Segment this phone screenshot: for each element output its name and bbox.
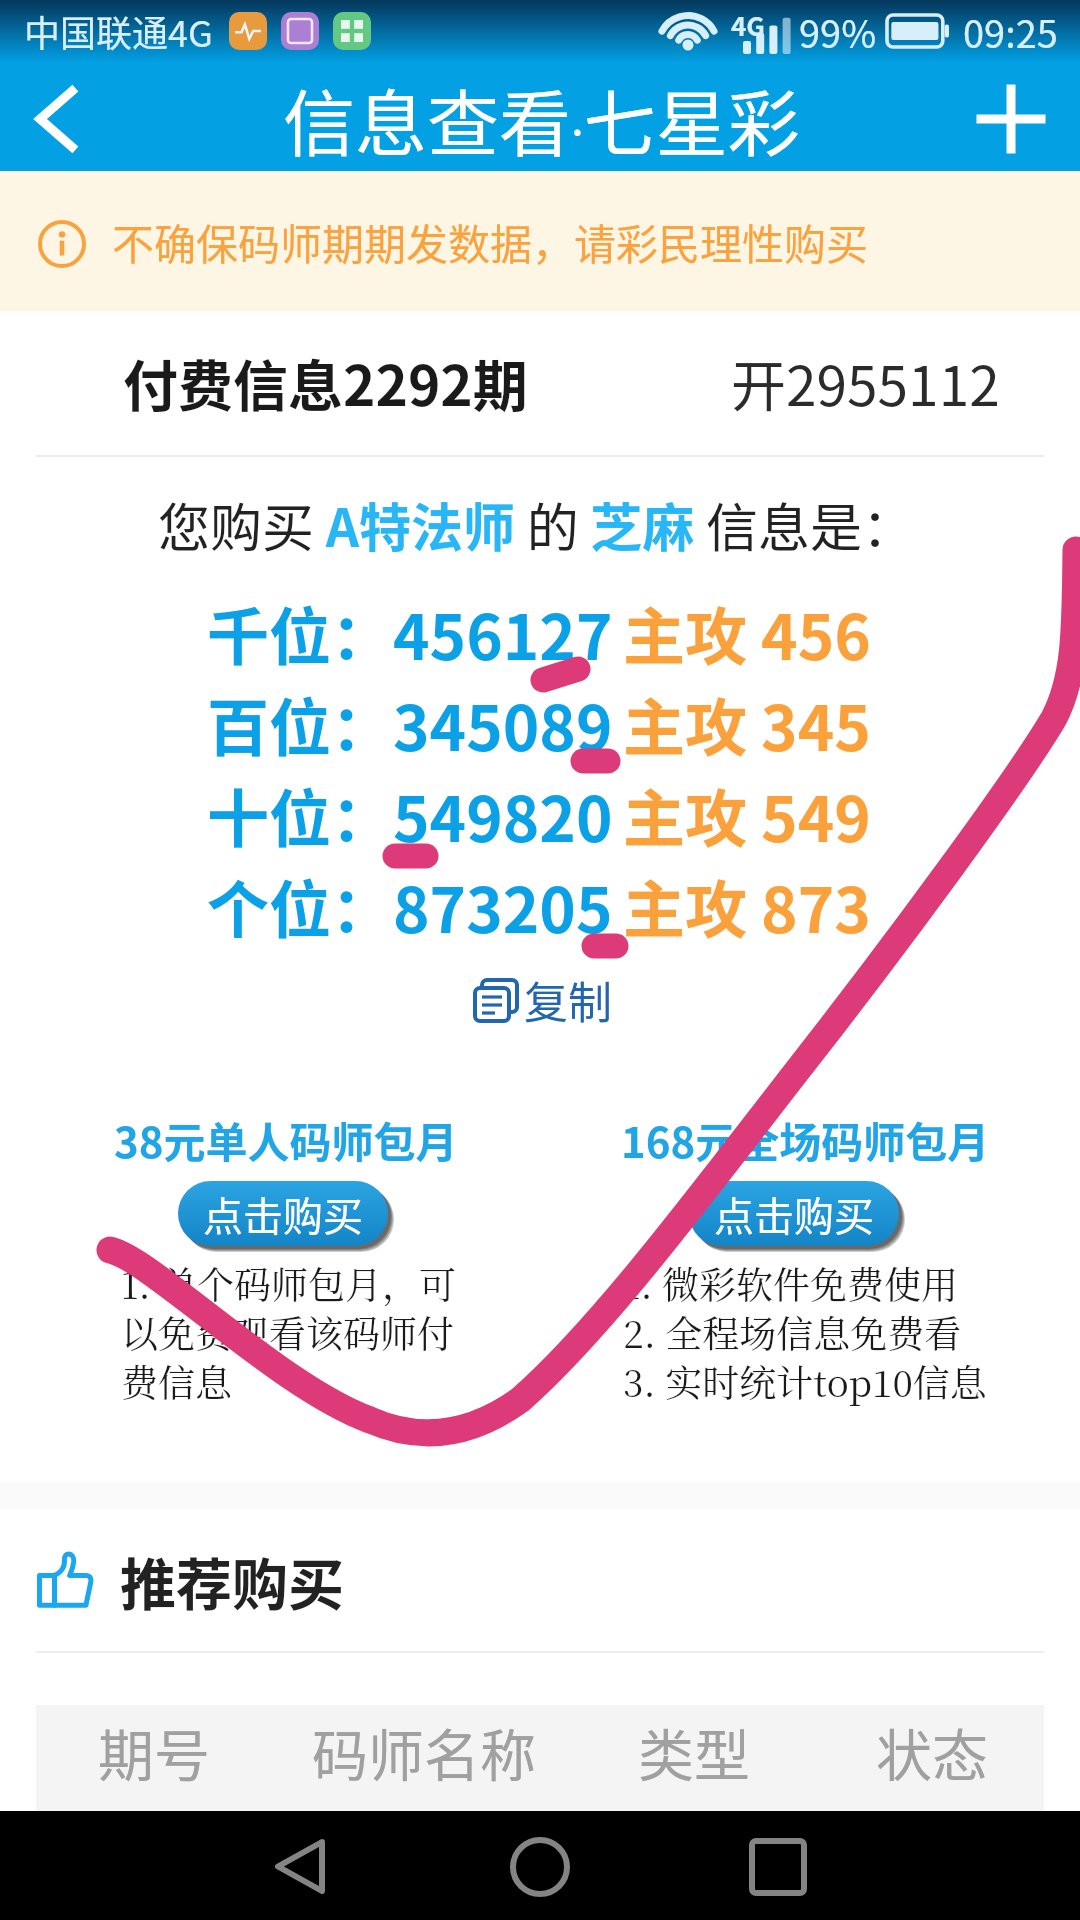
staticText: 中国联通4G — [24, 5, 213, 57]
staticText: 复制 — [524, 968, 612, 1032]
staticText: 3. 实时统计top10信息 — [623, 1354, 987, 1407]
staticText: 168元全场码师包月 — [621, 1109, 990, 1170]
staticText: 码师名称 — [312, 1711, 536, 1792]
staticText: 99% — [799, 4, 877, 59]
staticText: 38元单人码师包月 — [114, 1109, 458, 1170]
button[interactable]: Back — [0, 62, 113, 175]
staticText: 1. 单个码师包月，可 — [121, 1256, 456, 1309]
button[interactable]: 点击购买 — [178, 1181, 388, 1246]
staticText: 开2955112 — [731, 342, 1000, 422]
staticText: 不确保码师期期发数据，请彩民理性购买 — [112, 211, 869, 272]
staticText: 费信息 — [121, 1354, 232, 1407]
staticText: 十位：549820 — [207, 770, 613, 860]
staticText: 主攻 345 — [623, 679, 871, 769]
button[interactable]: 点击购买 — [689, 1181, 899, 1246]
staticText: 期号 — [98, 1711, 210, 1792]
staticText: 状态 — [876, 1711, 988, 1792]
staticText: 您购买 A特法师 的 芝麻 信息是： — [158, 487, 914, 562]
staticText: 千位：456127 — [207, 588, 613, 678]
staticText: 主攻 549 — [623, 770, 871, 860]
button[interactable]: Recents — [718, 1811, 838, 1920]
staticText: 个位：873205 — [207, 861, 613, 951]
button[interactable]: 复制 — [467, 964, 620, 1036]
staticText: 付费信息2292期 — [123, 342, 528, 422]
button[interactable]: Back — [240, 1811, 360, 1920]
staticText: 2. 全程场信息免费看 — [623, 1305, 962, 1358]
staticText: 4G — [731, 6, 765, 44]
staticText: 点击购买 — [203, 1185, 363, 1243]
staticText: 主攻 456 — [623, 588, 871, 678]
staticText: 类型 — [638, 1711, 750, 1792]
staticText: 信息查看·七星彩 — [283, 66, 800, 170]
button[interactable]: Add — [954, 62, 1067, 175]
staticText: 1. 微彩软件免费使用 — [623, 1256, 958, 1309]
staticText: 推荐购买 — [120, 1540, 344, 1621]
staticText: 点击购买 — [714, 1185, 874, 1243]
staticText: 以免费观看该码师付 — [121, 1305, 454, 1358]
staticText: 百位：345089 — [207, 679, 613, 769]
button[interactable]: Home — [480, 1811, 600, 1920]
staticText: 09:25 — [963, 4, 1058, 59]
staticText: 主攻 873 — [623, 861, 871, 951]
